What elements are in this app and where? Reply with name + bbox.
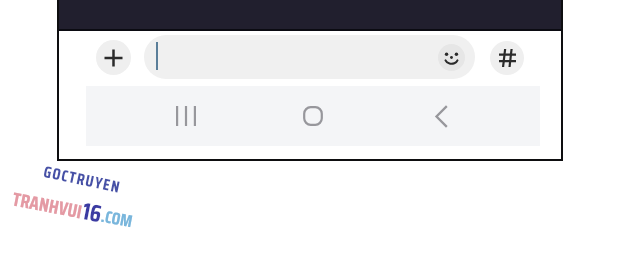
staticText: GOCTRUYEN <box>41 159 124 200</box>
staticText: .COM <box>99 203 135 235</box>
button[interactable] <box>144 35 475 79</box>
staticText: 16 <box>79 192 105 233</box>
button[interactable]: Emoji <box>438 44 465 71</box>
button[interactable]: Hashtag <box>490 41 524 75</box>
button[interactable]: Add attachment <box>96 40 131 75</box>
staticText: TRANHVUI <box>10 184 85 227</box>
button[interactable]: Back <box>403 88 478 144</box>
button[interactable]: Recent apps <box>148 88 223 144</box>
button[interactable]: Home <box>275 88 350 144</box>
